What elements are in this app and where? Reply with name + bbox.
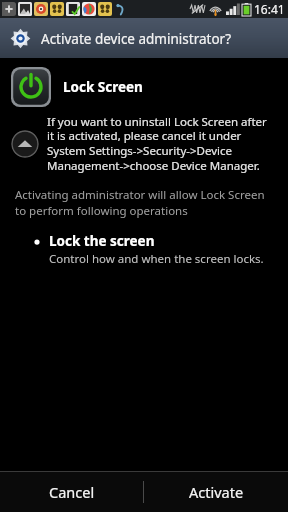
staticText: Lock Screen bbox=[63, 78, 143, 96]
button[interactable]: Lock the screen bbox=[0, 232, 288, 267]
staticText: Cancel bbox=[49, 482, 95, 502]
staticText: 16:41 bbox=[254, 1, 285, 17]
staticText: Activating administrator will allow Lock… bbox=[15, 187, 272, 218]
button[interactable]: Collapse bbox=[11, 130, 39, 158]
staticText: Activate device administrator? bbox=[41, 30, 231, 48]
staticText: Control how and when the screen locks. bbox=[49, 251, 264, 267]
staticText: Lock the screen bbox=[49, 232, 155, 250]
button[interactable]: Activate bbox=[144, 472, 288, 512]
staticText: Activate bbox=[189, 482, 244, 502]
staticText: If you want to uninstall Lock Screen aft… bbox=[47, 114, 274, 174]
button[interactable]: Cancel bbox=[0, 472, 143, 512]
